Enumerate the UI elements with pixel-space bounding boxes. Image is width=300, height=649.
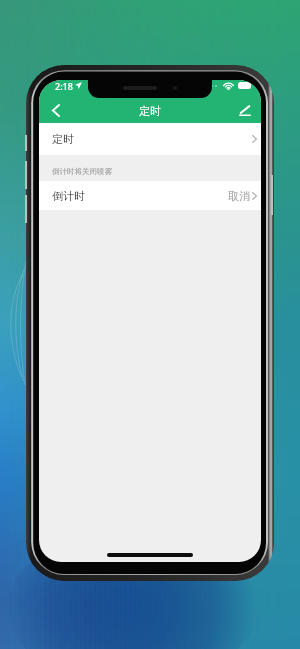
staticText: 定时	[39, 104, 261, 118]
button[interactable]: Edit	[232, 98, 258, 123]
staticText: 2:18	[55, 80, 73, 91]
staticText: 倒计时将关闭喷雾	[52, 167, 112, 176]
button[interactable]: Back	[42, 98, 68, 123]
button[interactable]: 定时	[39, 123, 261, 155]
staticText: 取消	[228, 189, 250, 203]
staticText: 定时	[52, 132, 74, 146]
button[interactable]: 倒计时	[39, 181, 261, 210]
staticText: 倒计时	[52, 189, 85, 203]
